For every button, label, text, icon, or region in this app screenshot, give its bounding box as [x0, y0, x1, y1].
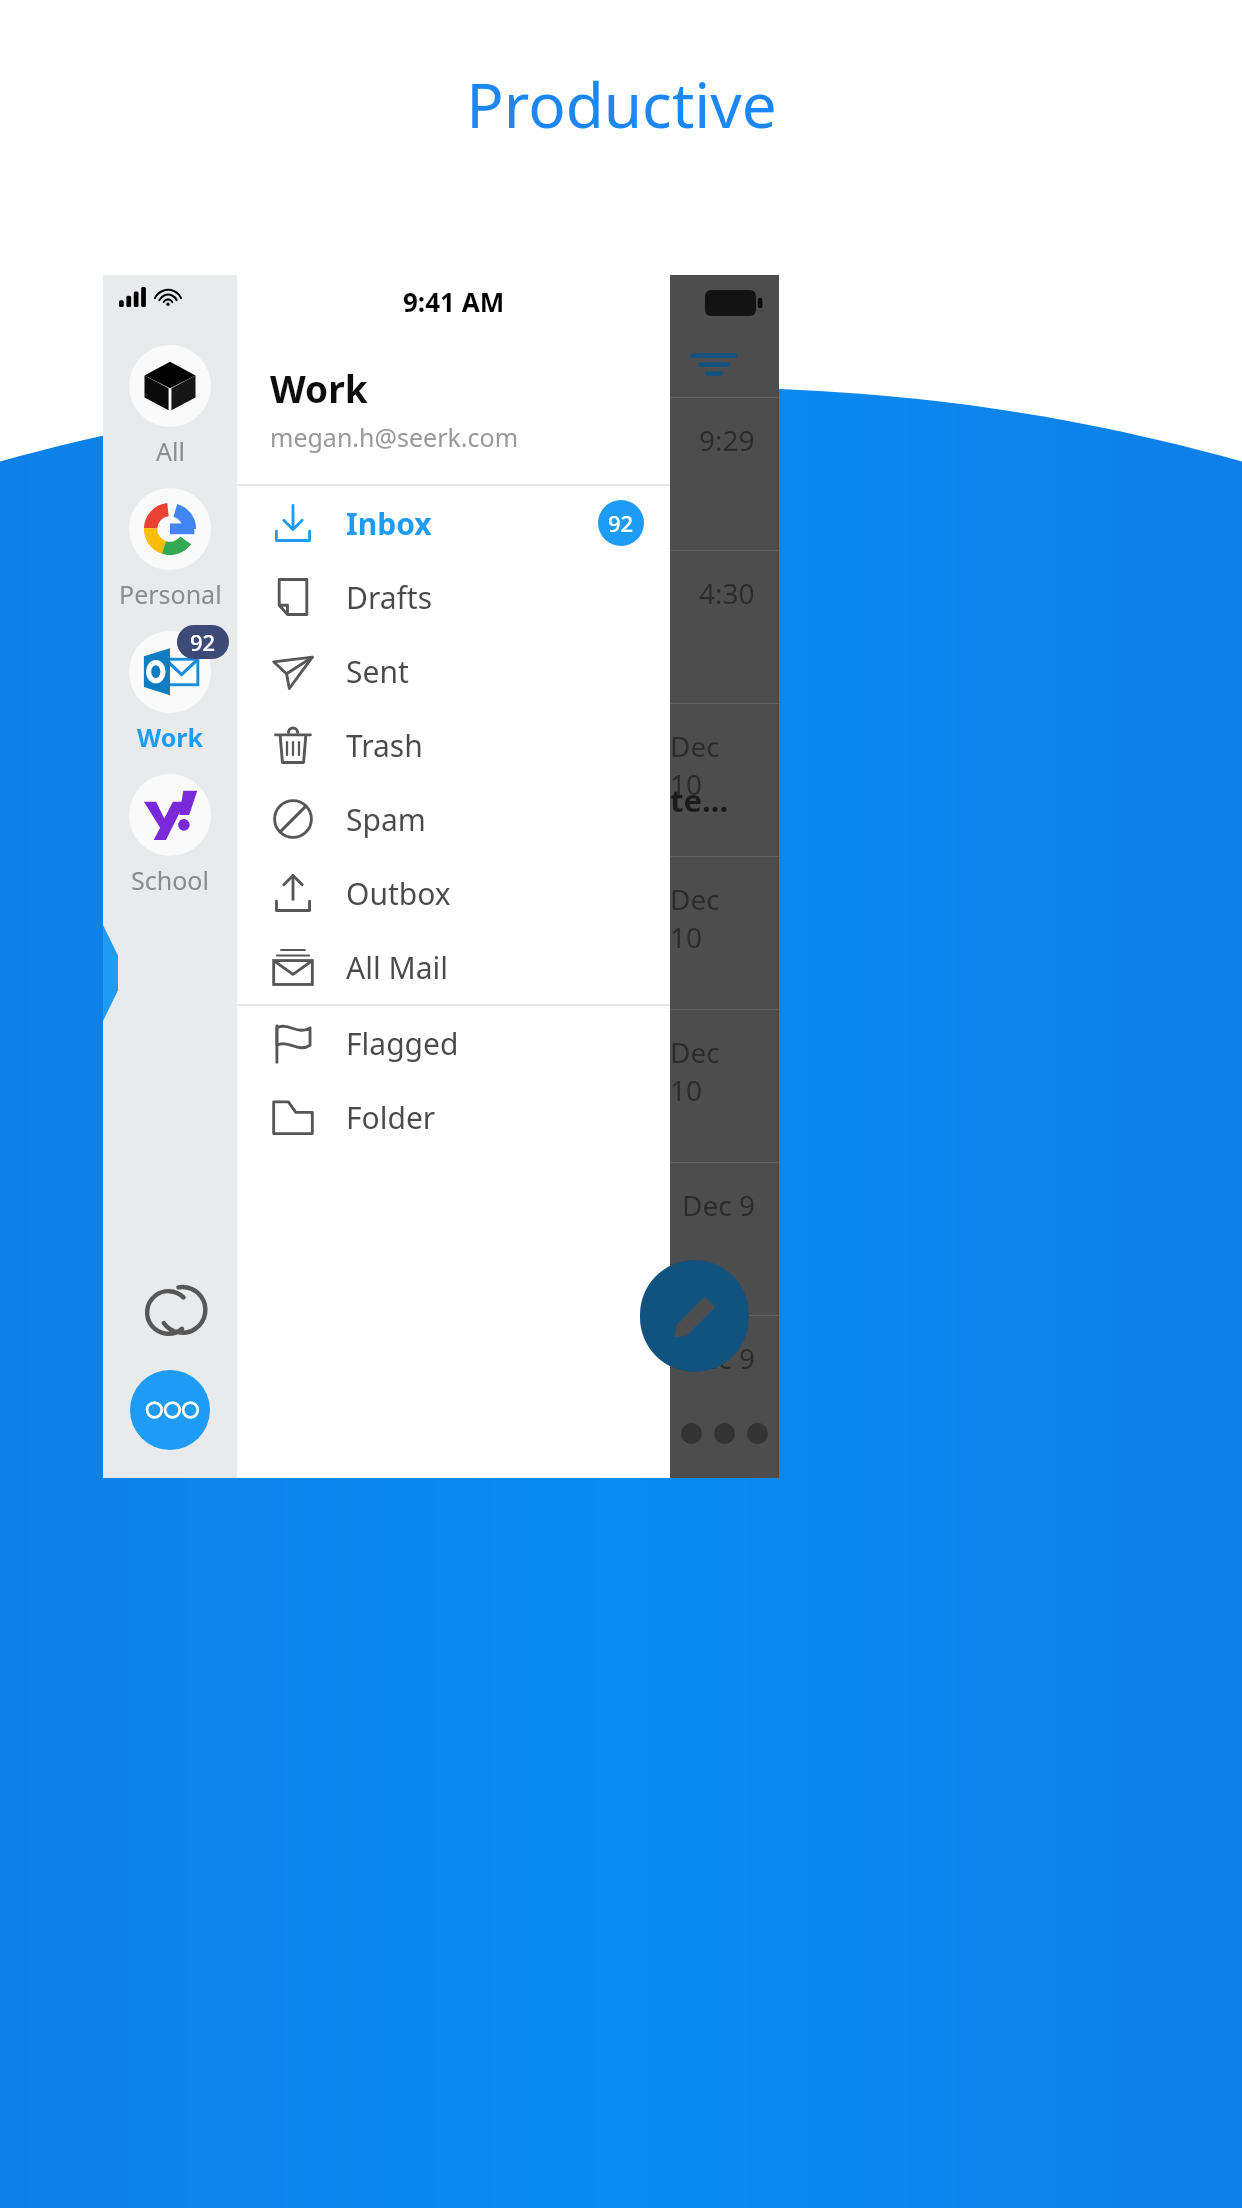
staticText: megan.h@seerk.com	[270, 420, 519, 454]
staticText: School	[131, 863, 209, 897]
staticText: 4:30	[699, 574, 755, 612]
staticText: Drafts	[346, 577, 433, 618]
staticText: Outbox	[346, 873, 451, 914]
button[interactable]: Dec 10	[670, 856, 779, 1009]
button[interactable]: Filter	[685, 344, 743, 384]
button[interactable]: Trash	[237, 708, 670, 782]
staticText: Dec 10	[670, 727, 755, 803]
button[interactable]: Sent	[237, 634, 670, 708]
staticText: Work	[270, 363, 368, 413]
button[interactable]: Drafts	[237, 560, 670, 634]
staticText: Flagged	[346, 1023, 459, 1064]
staticText: Sent	[346, 651, 409, 692]
staticText: Trash	[346, 725, 423, 766]
staticText: Dec 10	[670, 880, 755, 956]
button[interactable]: Night mode	[137, 1280, 203, 1346]
button[interactable]: Spam	[237, 782, 670, 856]
staticText: All	[156, 434, 185, 468]
staticText: Personal	[119, 577, 222, 611]
button[interactable]: Dec 9	[670, 1315, 779, 1468]
button[interactable]: Dec 10	[670, 1009, 779, 1162]
button[interactable]: Dec 10	[670, 703, 779, 856]
button[interactable]: Inbox	[237, 486, 670, 560]
button[interactable]: 4:30	[670, 550, 779, 703]
button[interactable]: More options	[130, 1370, 210, 1450]
staticText: 9:29	[699, 421, 755, 459]
staticText: Dec 10	[670, 1033, 755, 1109]
button[interactable]: All	[103, 345, 237, 468]
staticText: Dec 9	[682, 1339, 755, 1377]
button[interactable]: Personal	[103, 488, 237, 611]
button[interactable]: All Mail	[237, 930, 670, 1004]
button[interactable]: 92	[103, 631, 237, 754]
staticText: 92	[608, 508, 634, 538]
staticText: te...	[670, 779, 729, 821]
staticText: Inbox	[346, 503, 432, 544]
staticText: Work	[137, 720, 203, 754]
button[interactable]: Compose	[640, 1260, 749, 1372]
staticText: All Mail	[346, 947, 448, 988]
staticText: 9:41 AM	[403, 284, 505, 319]
button[interactable]: 9:29	[670, 397, 779, 550]
button[interactable]: Dec 9	[670, 1162, 779, 1315]
staticText: Spam	[346, 799, 426, 840]
staticText: Folder	[346, 1097, 436, 1138]
button[interactable]: School	[103, 774, 237, 897]
staticText: Dec 9	[682, 1186, 755, 1224]
staticText: Productive	[466, 62, 777, 146]
button[interactable]: Outbox	[237, 856, 670, 930]
button[interactable]: Flagged	[237, 1006, 670, 1080]
button[interactable]: Folder	[237, 1080, 670, 1154]
staticText: 92	[190, 627, 216, 657]
